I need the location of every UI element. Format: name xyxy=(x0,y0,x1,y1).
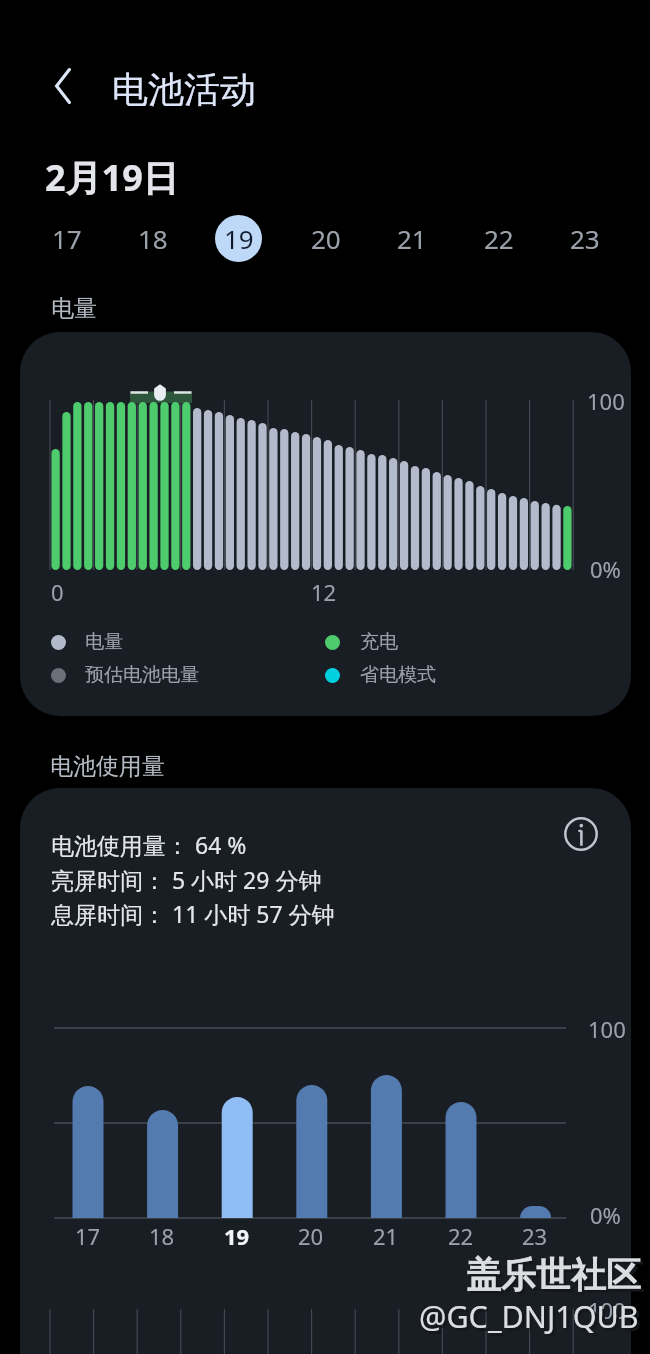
button[interactable]: 19 xyxy=(200,202,276,274)
staticText: 电量 xyxy=(85,630,123,654)
staticText: 23 xyxy=(522,1221,548,1251)
button[interactable]: 22 xyxy=(460,202,536,274)
staticText: 省电模式 xyxy=(360,663,436,687)
button[interactable]: 23 xyxy=(546,202,622,274)
staticText: 20 xyxy=(298,1221,324,1251)
staticText: 0% xyxy=(590,1200,621,1230)
button[interactable]: Back xyxy=(32,55,94,117)
button[interactable]: Info xyxy=(557,810,605,858)
staticText: 19 xyxy=(224,1221,250,1251)
staticText: @GC_DNJ1QUB xyxy=(419,1295,639,1337)
staticText: 23 xyxy=(570,221,600,256)
staticText: 电池使用量： 64 % xyxy=(51,829,247,860)
staticText: 0% xyxy=(590,554,621,584)
staticText: 电量 xyxy=(51,294,97,323)
button[interactable]: 18 xyxy=(114,202,190,274)
staticText: 18 xyxy=(149,1221,175,1251)
staticText: 18 xyxy=(138,221,168,256)
button[interactable]: 17 xyxy=(28,202,104,274)
staticText: 0 xyxy=(51,577,64,607)
staticText: 100 xyxy=(588,1014,626,1044)
staticText: 17 xyxy=(52,221,82,256)
staticText: 充电 xyxy=(360,630,398,654)
staticText: 19 xyxy=(224,221,254,256)
staticText: 21 xyxy=(373,1221,399,1251)
staticText: 2月19日 xyxy=(45,153,179,202)
staticText: 电池使用量 xyxy=(50,752,165,781)
staticText: 12 xyxy=(311,577,337,607)
staticText: @GC_DNJ1QUB xyxy=(422,1298,642,1340)
staticText: 100 xyxy=(587,386,625,416)
staticText: 预估电池电量 xyxy=(85,663,199,687)
staticText: 21 xyxy=(397,221,427,256)
staticText: 亮屏时间： 5 小时 29 分钟 xyxy=(51,864,322,895)
staticText: 22 xyxy=(484,221,514,256)
staticText: 电池活动 xyxy=(112,67,256,112)
staticText: 100 xyxy=(588,1295,626,1325)
staticText: 盖乐世社区 xyxy=(469,1256,644,1300)
staticText: 盖乐世社区 xyxy=(466,1253,641,1297)
staticText: 22 xyxy=(448,1221,474,1251)
staticText: 息屏时间： 11 小时 57 分钟 xyxy=(51,898,335,929)
button[interactable]: 20 xyxy=(287,202,363,274)
button[interactable]: 21 xyxy=(373,202,449,274)
staticText: 17 xyxy=(75,1221,101,1251)
staticText: 20 xyxy=(311,221,341,256)
